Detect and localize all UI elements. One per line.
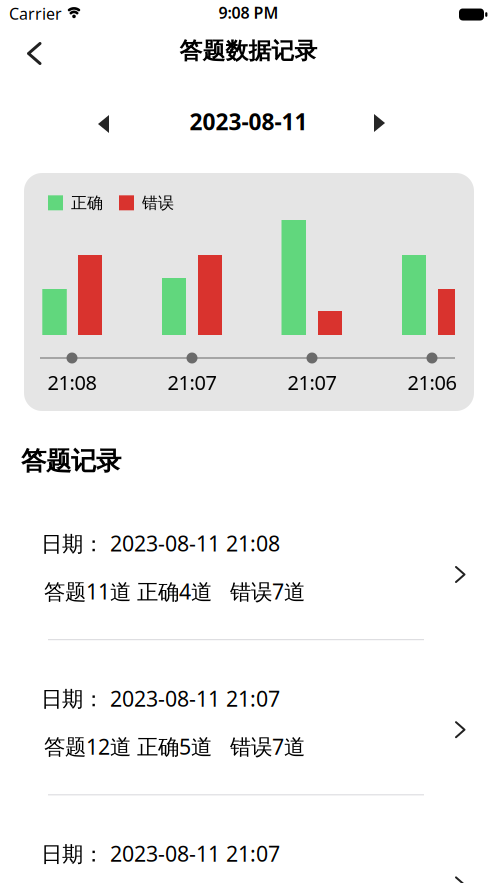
- staticText: 正确: [71, 193, 103, 213]
- staticText: 答题11道 正确4道 错误7道: [44, 577, 305, 605]
- button[interactable]: 日期： 2023-08-11 21:08: [0, 527, 497, 639]
- staticText: 错误: [142, 193, 174, 213]
- staticText: 答题数据记录: [179, 37, 317, 65]
- button[interactable]: Next day: [366, 106, 393, 140]
- staticText: 21:06: [407, 369, 456, 396]
- button[interactable]: Previous day: [90, 107, 117, 141]
- staticText: 2023-08-11: [189, 106, 307, 137]
- staticText: 日期： 2023-08-11 21:07: [41, 684, 280, 712]
- staticText: 9:08 PM: [218, 2, 278, 23]
- staticText: 日期： 2023-08-11 21:08: [41, 529, 280, 557]
- button[interactable]: 日期： 2023-08-11 21:07: [0, 682, 497, 794]
- staticText: 21:07: [167, 369, 216, 396]
- button[interactable]: Back: [15, 30, 54, 77]
- staticText: 21:08: [47, 369, 96, 396]
- staticText: 答题记录: [21, 445, 121, 477]
- button[interactable]: 日期： 2023-08-11 21:07: [0, 837, 497, 883]
- staticText: 日期： 2023-08-11 21:07: [41, 839, 280, 868]
- staticText: 答题12道 正确5道 错误7道: [44, 732, 305, 760]
- staticText: Carrier: [9, 3, 62, 24]
- staticText: 21:07: [287, 369, 336, 396]
